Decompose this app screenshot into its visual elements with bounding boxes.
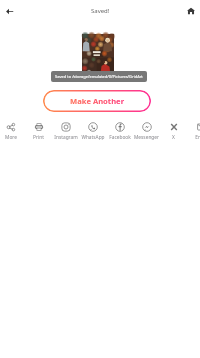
button[interactable]: More bbox=[0, 119, 24, 141]
button[interactable]: X bbox=[160, 119, 187, 141]
staticText: WhatsApp bbox=[81, 134, 105, 141]
staticText: Instagram bbox=[54, 134, 78, 141]
button[interactable]: Facebook bbox=[106, 119, 133, 141]
staticText: Saved to /storage/emulated/0/Pictures/Gr… bbox=[55, 74, 143, 79]
staticText: Saved! bbox=[91, 7, 110, 15]
staticText: Facebook bbox=[109, 134, 131, 141]
staticText: Print bbox=[33, 134, 44, 141]
button[interactable]: Email bbox=[188, 119, 200, 141]
button[interactable]: Make Another bbox=[43, 90, 151, 112]
staticText: Email bbox=[195, 134, 200, 141]
staticText: Messenger bbox=[134, 134, 159, 141]
button[interactable]: Messenger bbox=[133, 119, 160, 141]
button[interactable]: Print bbox=[25, 119, 52, 141]
staticText: X bbox=[172, 134, 175, 141]
button[interactable]: WhatsApp bbox=[79, 119, 106, 141]
staticText: Make Another bbox=[70, 96, 125, 106]
button[interactable]: Back bbox=[1, 3, 17, 19]
button[interactable]: Instagram bbox=[52, 119, 79, 141]
button[interactable]: Home bbox=[183, 3, 199, 19]
staticText: More bbox=[5, 134, 17, 141]
